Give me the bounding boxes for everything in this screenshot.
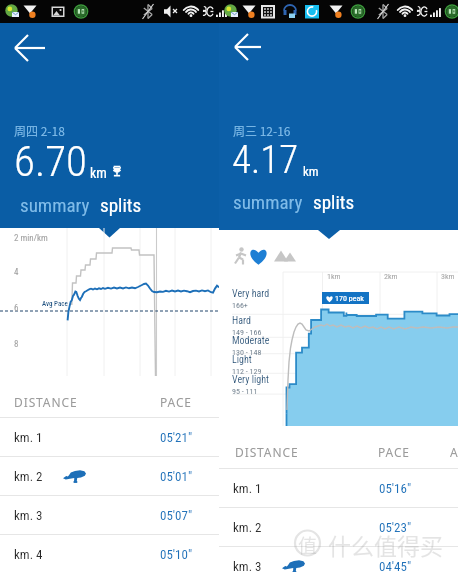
staticText: km xyxy=(303,164,319,179)
staticText: 值 xyxy=(298,531,318,559)
staticText: Light xyxy=(232,354,252,366)
staticText: summary xyxy=(20,194,90,216)
staticText: km. 1 xyxy=(233,481,262,496)
button[interactable]: km. 3 xyxy=(219,547,458,572)
button[interactable]: Back xyxy=(223,25,273,69)
staticText: Very light xyxy=(232,374,269,386)
staticText: km. 2 xyxy=(233,520,262,535)
button[interactable]: summary xyxy=(233,191,303,213)
button[interactable]: km. 1 xyxy=(0,418,219,456)
staticText: 2 min/km xyxy=(14,233,48,244)
staticText: 95 - 111 xyxy=(232,387,258,396)
staticText: 130 - 148 xyxy=(232,348,262,357)
staticText: 05'07" xyxy=(160,508,193,523)
staticText: 周三 12-16 xyxy=(233,122,291,139)
button[interactable]: km. 2 xyxy=(0,457,219,495)
staticText: km. 3 xyxy=(14,508,43,523)
button[interactable]: km. 4 xyxy=(0,535,219,572)
staticText: 1km xyxy=(327,272,341,281)
staticText: DISTANCE xyxy=(235,444,299,460)
staticText: splits xyxy=(313,191,355,213)
staticText: km. 1 xyxy=(14,430,43,445)
staticText: 05'23" xyxy=(379,520,412,535)
staticText: 周四 2-18 xyxy=(14,122,65,139)
staticText: 05'16" xyxy=(379,481,412,496)
button[interactable]: splits xyxy=(313,191,355,213)
button[interactable]: splits xyxy=(100,194,142,216)
staticText: A xyxy=(450,444,458,460)
staticText: km. 2 xyxy=(14,469,43,484)
staticText: 05'01" xyxy=(160,469,193,484)
staticText: Hard xyxy=(232,315,251,327)
staticText: 4 xyxy=(14,267,19,278)
staticText: km. 4 xyxy=(14,547,43,562)
button[interactable]: summary xyxy=(20,194,90,216)
staticText: Very hard xyxy=(232,288,270,300)
button[interactable]: km. 1 xyxy=(219,469,458,507)
staticText: PACE xyxy=(160,394,192,410)
staticText: 2km xyxy=(384,272,398,281)
staticText: 什么值得买 xyxy=(328,528,443,561)
staticText: 112 - 129 xyxy=(232,367,262,376)
button[interactable]: km. 2 xyxy=(219,508,458,546)
staticText: 170 peak xyxy=(335,294,364,303)
staticText: 04'45" xyxy=(379,559,412,572)
staticText: 05'21" xyxy=(160,430,193,445)
staticText: Moderate xyxy=(232,335,270,347)
staticText: km xyxy=(90,165,107,181)
staticText: 8 xyxy=(14,339,19,350)
staticText: PACE xyxy=(378,444,410,460)
staticText: km. 3 xyxy=(233,559,262,572)
button[interactable]: Back xyxy=(3,26,57,70)
staticText: splits xyxy=(100,194,142,216)
button[interactable]: km. 3 xyxy=(0,496,219,534)
staticText: 6.70 xyxy=(14,136,88,186)
staticText: 05'10" xyxy=(160,547,193,562)
staticText: 3km xyxy=(441,272,455,281)
staticText: summary xyxy=(233,191,303,213)
staticText: 166+ xyxy=(232,301,248,310)
staticText: DISTANCE xyxy=(14,394,78,410)
staticText: 149 - 166 xyxy=(232,328,262,337)
staticText: 6 xyxy=(14,303,19,314)
staticText: Avg Pace xyxy=(42,300,68,308)
staticText: 4.17 xyxy=(232,137,299,183)
